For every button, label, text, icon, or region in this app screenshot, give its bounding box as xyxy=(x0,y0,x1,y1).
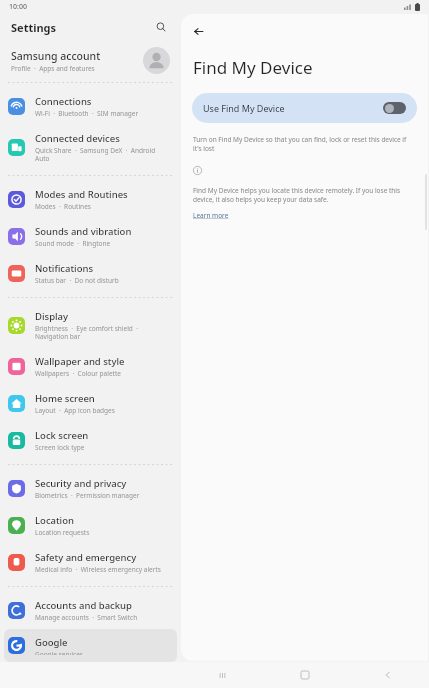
other: Use Find My Device toggle, off xyxy=(383,102,406,114)
staticText: Quick Share · Samsung DeX · Android Auto xyxy=(35,146,169,163)
button[interactable]: Learn more xyxy=(193,211,229,220)
staticText: Settings xyxy=(11,20,57,35)
staticText: Biometrics · Permission manager xyxy=(35,491,140,500)
staticText: Lock screen xyxy=(35,429,89,442)
staticText: Security and privacy xyxy=(35,477,127,490)
staticText: Wallpapers · Colour palette xyxy=(35,369,121,378)
staticText: Connections xyxy=(35,95,92,108)
button[interactable]: Display xyxy=(4,303,177,348)
staticText: Samsung account xyxy=(11,49,101,63)
staticText: Location requests xyxy=(35,528,90,537)
button[interactable]: Home xyxy=(292,662,318,688)
staticText: Modes and Routines xyxy=(35,188,128,201)
button[interactable]: Connected devices xyxy=(4,125,177,170)
button[interactable]: Recent apps xyxy=(209,662,235,688)
button[interactable]: Samsung account xyxy=(0,41,181,82)
staticText: Use Find My Device xyxy=(203,102,285,114)
button[interactable]: Navigate up xyxy=(187,20,209,42)
staticText: Turn on Find My Device so that you can f… xyxy=(193,135,416,153)
staticText: Sound mode · Ringtone xyxy=(35,239,111,248)
button[interactable]: Location xyxy=(4,507,177,544)
button[interactable]: Back xyxy=(375,662,401,688)
staticText: Brightness · Eye comfort shield · Naviga… xyxy=(35,324,169,341)
button[interactable]: Google xyxy=(4,629,177,662)
staticText: Layout · App icon badges xyxy=(35,406,115,415)
staticText: Safety and emergency xyxy=(35,551,137,564)
button[interactable]: Search settings xyxy=(152,18,170,36)
staticText: Find My Device xyxy=(193,56,313,79)
staticText: Status bar · Do not disturb xyxy=(35,276,119,285)
button[interactable]: Lock screen xyxy=(4,422,177,459)
staticText: Connected devices xyxy=(35,132,120,145)
staticText: Screen lock type xyxy=(35,443,85,452)
staticText: Manage accounts · Smart Switch xyxy=(35,613,138,622)
button[interactable]: Modes and Routines xyxy=(4,181,177,218)
staticText: Home screen xyxy=(35,392,95,405)
button[interactable]: Home screen xyxy=(4,385,177,422)
staticText: Find My Device helps you locate this dev… xyxy=(193,186,416,204)
button[interactable]: Connections xyxy=(4,88,177,125)
staticText: Learn more xyxy=(193,211,229,220)
staticText: Medical info · Wireless emergency alerts xyxy=(35,565,161,574)
staticText: Modes · Routines xyxy=(35,202,91,211)
staticText: Google xyxy=(35,636,68,649)
button[interactable]: Accounts and backup xyxy=(4,592,177,629)
staticText: Profile · Apps and features xyxy=(11,64,95,73)
staticText: Display xyxy=(35,310,69,323)
staticText: Wi-Fi · Bluetooth · SIM manager xyxy=(35,109,139,118)
staticText: Location xyxy=(35,514,74,527)
button[interactable]: Safety and emergency xyxy=(4,544,177,581)
staticText: Google services xyxy=(35,650,83,655)
button[interactable]: Security and privacy xyxy=(4,470,177,507)
staticText: Notifications xyxy=(35,262,94,275)
button[interactable]: Sounds and vibration xyxy=(4,218,177,255)
button[interactable]: Wallpaper and style xyxy=(4,348,177,385)
button[interactable]: Notifications xyxy=(4,255,177,292)
staticText: 10:00 xyxy=(9,2,27,12)
staticText: Sounds and vibration xyxy=(35,225,132,238)
staticText: Wallpaper and style xyxy=(35,355,125,368)
button[interactable]: Use Find My Device xyxy=(192,93,417,123)
staticText: Accounts and backup xyxy=(35,599,132,612)
